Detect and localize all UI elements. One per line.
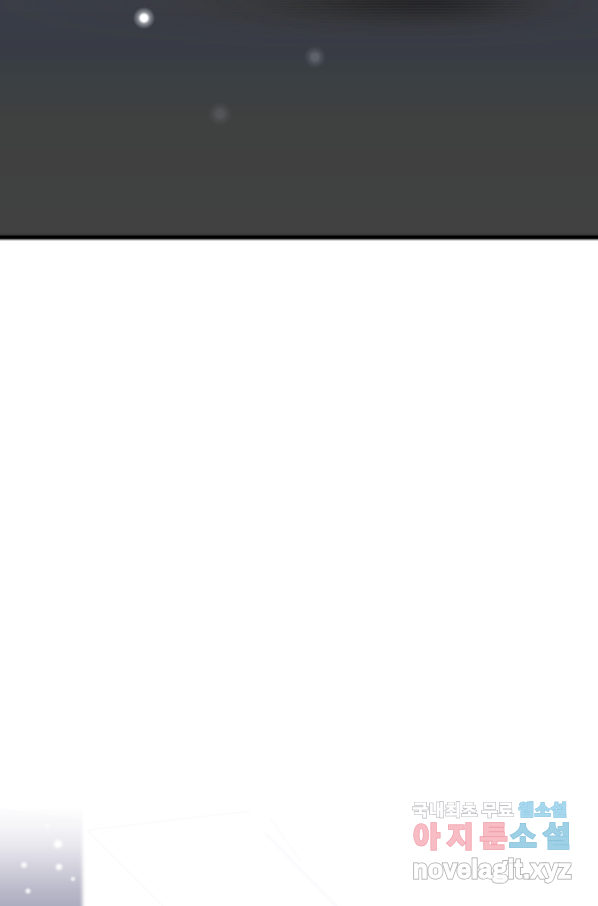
- button[interactable]: [0, 0, 598, 906]
